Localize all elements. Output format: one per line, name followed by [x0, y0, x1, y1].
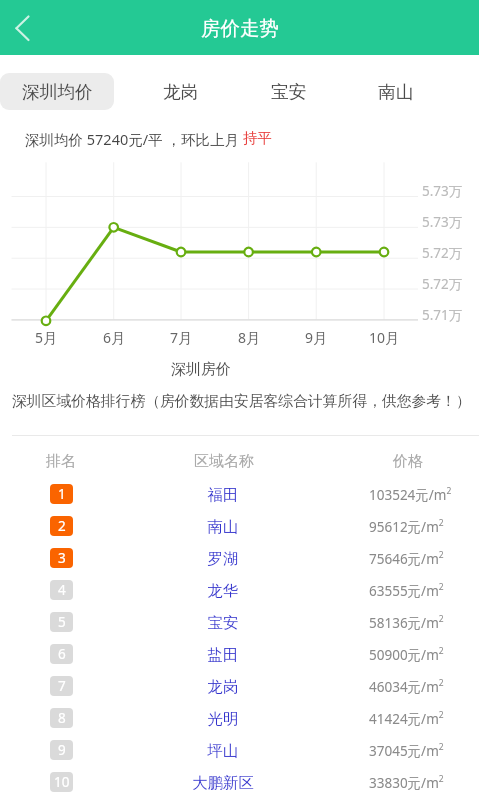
staticText: 排名 — [11, 452, 111, 471]
staticText: 6月 — [89, 328, 139, 347]
staticText: 2 — [58, 517, 66, 535]
staticText: 75646元/m2 — [369, 549, 444, 568]
staticText: 5.73万 — [422, 213, 463, 231]
staticText: 盐田 — [173, 645, 273, 664]
button[interactable]: 10 — [0, 766, 479, 798]
button[interactable]: 宝安 — [244, 73, 334, 110]
staticText: 宝安 — [271, 81, 307, 103]
staticText: 深圳区域价格排行榜（房价数据由安居客综合计算所得，供您参考！） — [12, 392, 471, 411]
staticText: 7 — [58, 677, 66, 695]
button[interactable]: 9 — [0, 734, 479, 766]
button[interactable]: 2 — [0, 510, 479, 542]
staticText: 持平 — [243, 129, 272, 147]
staticText: 37045元/m2 — [369, 741, 444, 760]
button[interactable]: 深圳均价 — [0, 73, 114, 110]
staticText: 宝安 — [173, 613, 273, 632]
staticText: 5.72万 — [422, 275, 463, 293]
button[interactable]: 8 — [0, 702, 479, 734]
staticText: 坪山 — [173, 741, 273, 760]
staticText: 8月 — [224, 328, 274, 347]
staticText: 南山 — [173, 517, 273, 536]
staticText: 50900元/m2 — [369, 645, 444, 664]
staticText: 南山 — [378, 81, 414, 103]
staticText: 深圳均价 57240元/平 ，环比上月 — [25, 129, 243, 149]
staticText: 10 — [54, 773, 70, 791]
staticText: 5.72万 — [422, 244, 463, 262]
staticText: 龙岗 — [173, 677, 273, 696]
staticText: 福田 — [173, 485, 273, 504]
button[interactable]: 南山 — [351, 73, 441, 110]
staticText: 1 — [58, 485, 66, 503]
staticText: 46034元/m2 — [369, 677, 444, 696]
staticText: 95612元/m2 — [369, 517, 444, 536]
staticText: 5.71万 — [422, 306, 463, 324]
staticText: 深圳房价 — [101, 360, 301, 379]
button[interactable]: Back — [0, 0, 46, 55]
staticText: 6 — [58, 645, 66, 663]
staticText: 价格 — [358, 452, 458, 471]
staticText: 7月 — [156, 328, 206, 347]
staticText: 光明 — [173, 709, 273, 728]
staticText: 33830元/m2 — [369, 773, 444, 792]
staticText: 5 — [58, 613, 66, 631]
staticText: 8 — [58, 709, 66, 727]
button[interactable]: 1 — [0, 478, 479, 510]
staticText: 63555元/m2 — [369, 581, 444, 600]
staticText: 5.73万 — [422, 182, 463, 200]
staticText: 大鹏新区 — [173, 773, 273, 792]
staticText: 103524元/m2 — [369, 485, 452, 504]
staticText: 罗湖 — [173, 549, 273, 568]
button[interactable]: 4 — [0, 574, 479, 606]
staticText: 41424元/m2 — [369, 709, 444, 728]
staticText: 9月 — [291, 328, 341, 347]
button[interactable]: 7 — [0, 670, 479, 702]
button[interactable]: 6 — [0, 638, 479, 670]
button[interactable]: 龙岗 — [136, 73, 226, 110]
staticText: 房价走势 — [201, 16, 279, 41]
staticText: 深圳均价 — [22, 81, 93, 103]
button[interactable]: 5 — [0, 606, 479, 638]
staticText: 10月 — [359, 328, 409, 347]
staticText: 4 — [58, 581, 66, 599]
staticText: 3 — [58, 549, 66, 567]
staticText: 58136元/m2 — [369, 613, 444, 632]
staticText: 龙华 — [173, 581, 273, 600]
button[interactable]: 3 — [0, 542, 479, 574]
staticText: 9 — [58, 741, 66, 759]
staticText: 龙岗 — [163, 81, 199, 103]
staticText: 区域名称 — [174, 452, 274, 471]
staticText: 5月 — [21, 328, 71, 347]
